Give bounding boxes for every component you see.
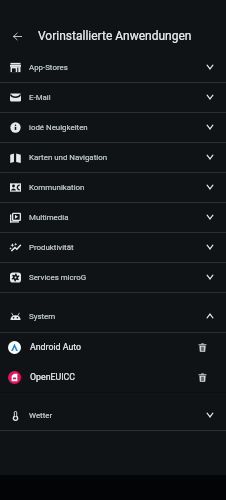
staticText: Wetter (29, 411, 53, 420)
button[interactable]: OpenEUICC (0, 363, 226, 393)
button[interactable]: Deinstallieren (192, 337, 212, 357)
staticText: Produktivität (29, 243, 74, 252)
button[interactable]: System (0, 302, 226, 333)
staticText: E-Mail (29, 93, 51, 102)
staticText: Karten und Navigation (29, 153, 107, 162)
staticText: OpenEUICC (30, 372, 76, 382)
staticText: Services microG (29, 273, 87, 282)
button[interactable]: Karten und Navigation (0, 143, 226, 173)
button[interactable]: Wetter (0, 401, 226, 431)
button[interactable]: Services microG (0, 263, 226, 293)
button[interactable]: Back (5, 24, 30, 49)
staticText: App-Stores (29, 63, 68, 72)
button[interactable]: App-Stores (0, 53, 226, 83)
staticText: Android Auto (30, 342, 82, 352)
button[interactable]: E-Mail (0, 83, 226, 113)
button[interactable]: Android Auto (0, 333, 226, 363)
staticText: Multimedia (29, 213, 69, 222)
staticText: Vorinstallierte Anwendungen (38, 29, 192, 43)
staticText: Kommunikation (29, 183, 85, 192)
staticText: System (29, 312, 56, 321)
staticText: iodé Neuigkeiten (29, 123, 88, 132)
button[interactable]: iodé Neuigkeiten (0, 113, 226, 143)
button[interactable]: Multimedia (0, 203, 226, 233)
button[interactable]: Produktivität (0, 233, 226, 263)
button[interactable]: Deinstallieren (192, 367, 212, 387)
button[interactable]: Kommunikation (0, 173, 226, 203)
